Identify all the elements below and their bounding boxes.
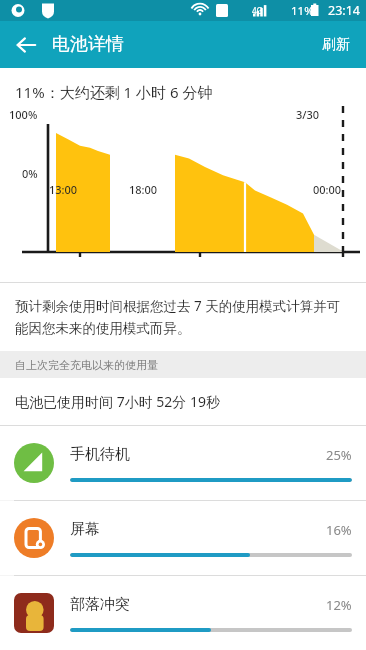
staticText: 电池详情 <box>52 33 124 56</box>
staticText: 电池已使用时间 7小时 52分 19秒 <box>15 392 220 411</box>
staticText: 部落冲突 <box>70 595 326 614</box>
staticText: 自上次完全充电以来的使用量 <box>15 358 158 372</box>
staticText: 手机待机 <box>70 445 326 464</box>
staticText: 11%：大约还剩 1 小时 6 分钟 <box>15 82 213 102</box>
staticText: 18:00 <box>129 182 158 197</box>
button[interactable]: 部落冲突 <box>0 576 366 650</box>
staticText: 13:00 <box>49 182 78 197</box>
staticText: 屏幕 <box>70 520 326 539</box>
staticText: 00:00 <box>313 182 342 197</box>
staticText: 25% <box>326 446 352 464</box>
staticText: 刷新 <box>322 36 350 54</box>
button[interactable]: 屏幕 <box>0 501 366 575</box>
staticText: 4G <box>252 5 263 16</box>
staticText: 11% <box>291 3 314 19</box>
staticText: 预计剩余使用时间根据您过去 7 天的使用模式计算并可能因您未来的使用模式而异。 <box>15 297 351 337</box>
button[interactable]: 刷新 <box>306 21 366 68</box>
staticText: 3/30 <box>296 107 320 122</box>
staticText: 16% <box>326 521 352 539</box>
staticText: 0% <box>22 166 38 181</box>
button[interactable]: 手机待机 <box>0 426 366 500</box>
button[interactable]: Back <box>4 23 48 67</box>
staticText: 12% <box>326 596 352 614</box>
staticText: 100% <box>9 107 38 122</box>
staticText: 23:14 <box>328 2 360 19</box>
